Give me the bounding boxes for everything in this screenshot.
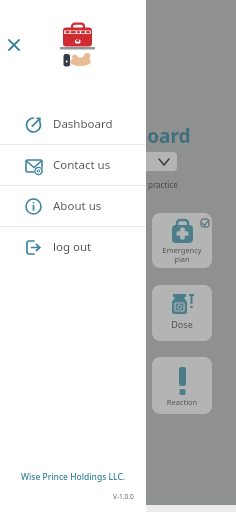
staticText: log out (53, 239, 92, 255)
button[interactable] (4, 35, 24, 55)
button[interactable]: log out (0, 227, 146, 267)
staticText: Wise Prince Holdings LLC. (21, 471, 126, 483)
staticText: Contact us (53, 157, 111, 173)
button[interactable]: Dose (152, 285, 212, 341)
staticText: Dashboard (88, 123, 191, 149)
staticText: practice (148, 179, 178, 190)
button[interactable]: Contact us (0, 145, 146, 185)
staticText: Emergency plan (152, 245, 212, 264)
button[interactable]: Reaction (152, 357, 212, 414)
button[interactable]: About us (0, 186, 146, 226)
staticText: Dashboard (53, 116, 113, 132)
button[interactable]: Emergency plan (152, 213, 212, 268)
staticText: Dose (152, 318, 212, 330)
staticText: About us (53, 198, 102, 214)
staticText: V-1.0.0 (113, 492, 134, 501)
button[interactable]: Dashboard (0, 104, 146, 144)
staticText: Reaction (152, 397, 212, 407)
button[interactable] (104, 152, 177, 171)
